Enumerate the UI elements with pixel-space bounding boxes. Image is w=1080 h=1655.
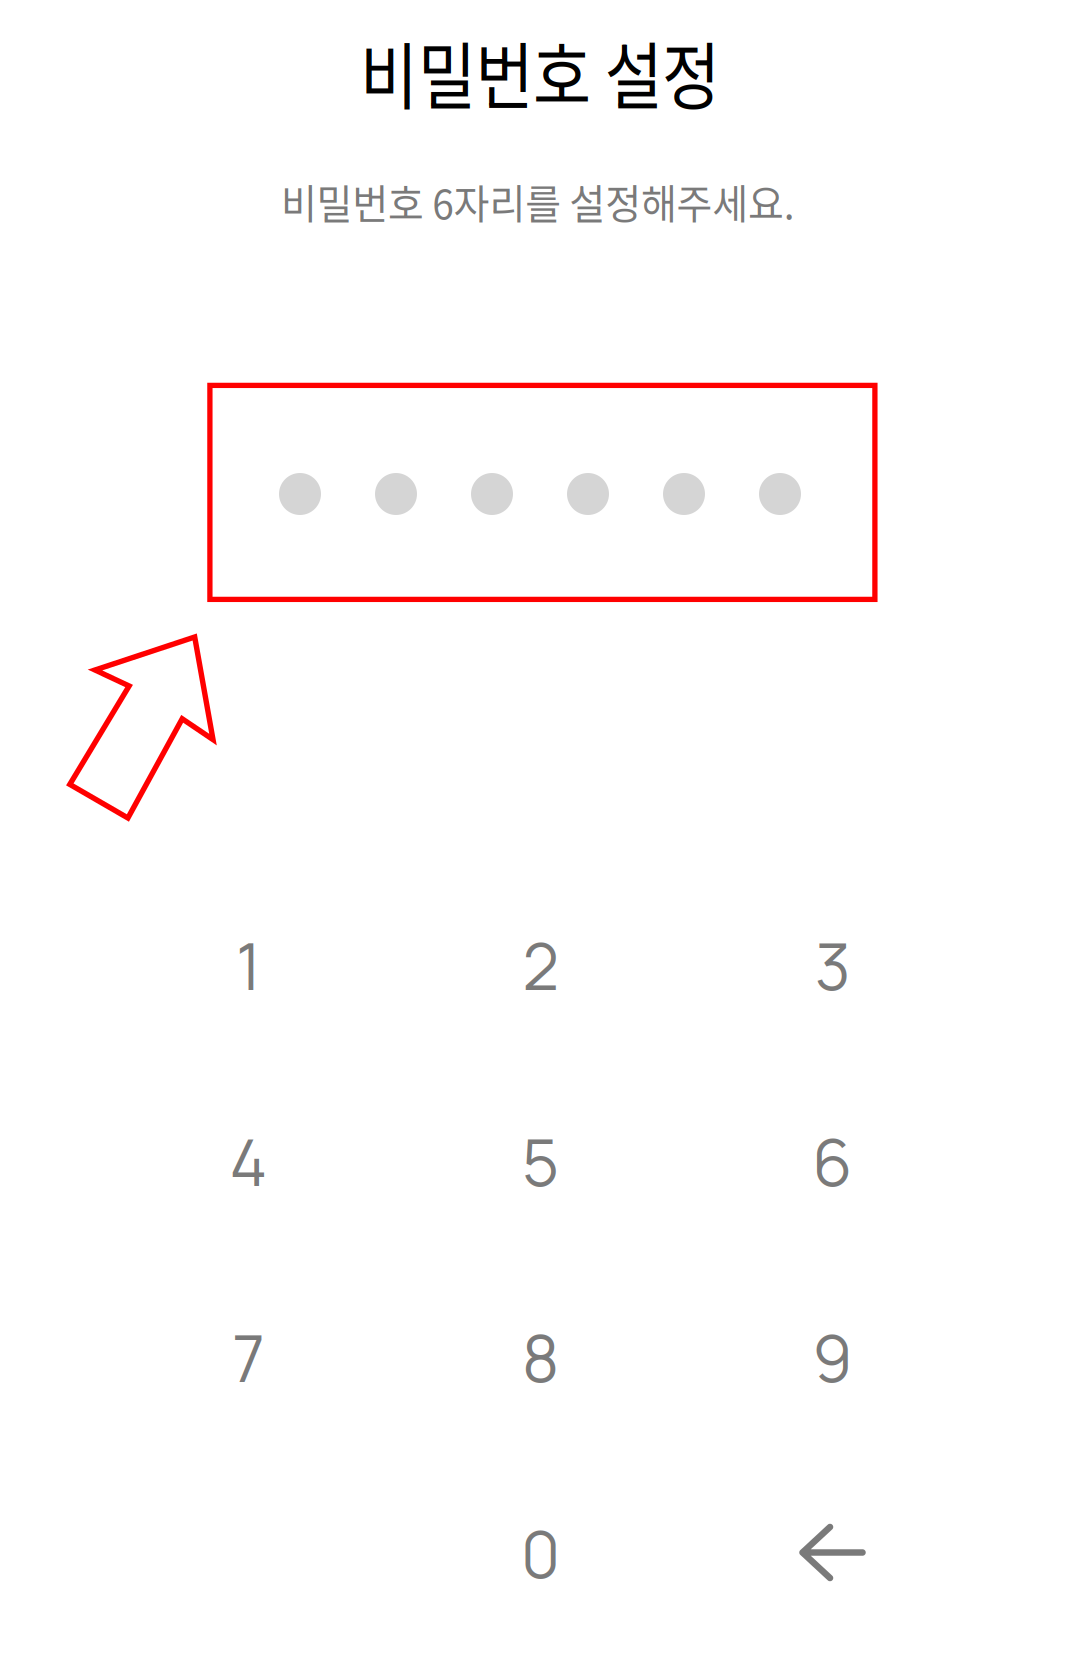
- button[interactable]: 3: [686, 867, 978, 1063]
- staticText: 2: [522, 922, 558, 1009]
- staticText: 4: [229, 1118, 267, 1205]
- staticText: 5: [522, 1118, 559, 1205]
- staticText: 3: [815, 922, 850, 1009]
- staticText: 8: [522, 1314, 559, 1401]
- button[interactable]: Delete: [686, 1455, 978, 1651]
- staticText: 1: [236, 922, 261, 1009]
- button[interactable]: 5: [394, 1063, 686, 1259]
- button[interactable]: 2: [394, 867, 686, 1063]
- staticText: 6: [812, 1118, 852, 1205]
- button[interactable]: 8: [394, 1259, 686, 1455]
- button[interactable]: 0: [394, 1455, 686, 1651]
- staticText: 7: [232, 1314, 264, 1401]
- staticText: 비밀번호 6자리를 설정해주세요.: [264, 172, 810, 231]
- button[interactable]: 4: [102, 1063, 394, 1259]
- button[interactable]: 7: [102, 1259, 394, 1455]
- button[interactable]: 1: [102, 867, 394, 1063]
- button[interactable]: 6: [686, 1063, 978, 1259]
- button[interactable]: 9: [686, 1259, 978, 1455]
- staticText: 비밀번호 설정: [331, 18, 749, 125]
- staticText: 0: [521, 1510, 560, 1597]
- staticText: 9: [812, 1314, 852, 1401]
